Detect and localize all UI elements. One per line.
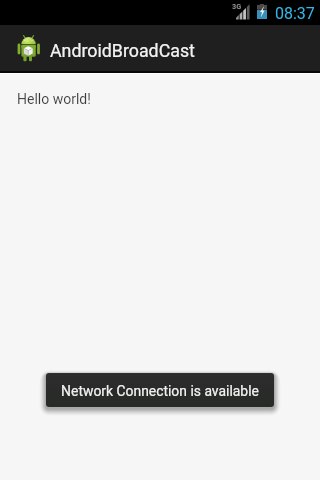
button[interactable]: App icon xyxy=(0,25,320,71)
staticText: Hello world! xyxy=(17,91,91,107)
button[interactable]: Network Connection is available xyxy=(46,373,274,407)
other: App icon xyxy=(17,34,40,61)
staticText: AndroidBroadCast xyxy=(50,40,195,61)
staticText: 3G xyxy=(232,2,242,11)
staticText: 08:37 xyxy=(275,4,315,23)
staticText: Network Connection is available xyxy=(61,383,259,399)
